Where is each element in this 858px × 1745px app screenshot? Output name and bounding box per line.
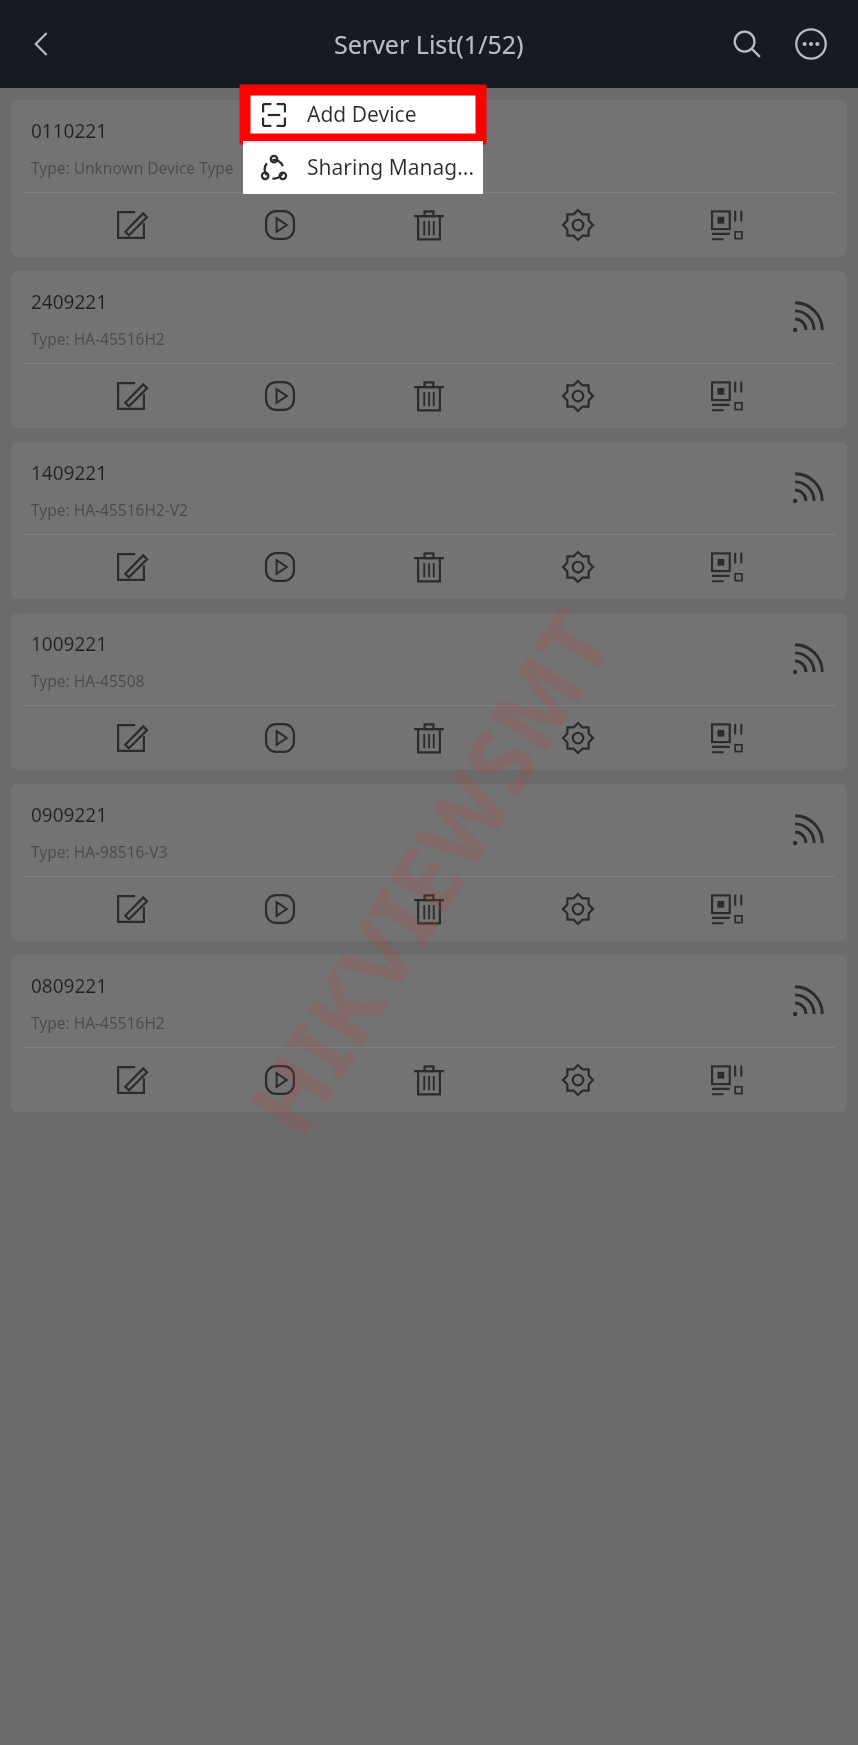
button[interactable]: Play <box>251 538 309 596</box>
button[interactable]: Edit <box>102 1051 160 1109</box>
button[interactable]: 1409221 <box>11 442 847 599</box>
button[interactable]: Delete <box>400 880 458 938</box>
button[interactable]: 1009221 <box>11 613 847 770</box>
button[interactable]: More options <box>784 17 838 71</box>
button[interactable]: Delete <box>400 709 458 767</box>
button[interactable]: Delete <box>400 1051 458 1109</box>
staticText: 0909221 <box>31 802 108 828</box>
button[interactable]: Edit <box>102 880 160 938</box>
button[interactable]: 2409221 <box>11 271 847 428</box>
button[interactable]: QR Code <box>698 538 756 596</box>
staticText: HIKVIEWSMT <box>219 587 639 1157</box>
button[interactable]: Play <box>251 709 309 767</box>
button[interactable]: Search <box>720 17 774 71</box>
button[interactable]: Play <box>251 367 309 425</box>
button[interactable]: Settings <box>549 538 607 596</box>
button[interactable]: 0110221 <box>11 100 847 257</box>
button[interactable]: 0909221 <box>11 784 847 941</box>
staticText: Server List(1/52) <box>334 27 524 61</box>
button[interactable]: Sharing Manag... <box>243 141 483 194</box>
button[interactable]: Play <box>251 880 309 938</box>
button[interactable]: Play <box>251 196 309 254</box>
staticText: 0809221 <box>31 973 108 999</box>
staticText: Type: HA-98516-V3 <box>31 841 168 862</box>
button[interactable]: Settings <box>549 196 607 254</box>
button[interactable]: Back <box>14 16 70 72</box>
button[interactable]: Edit <box>102 709 160 767</box>
staticText: Add Device <box>307 100 417 129</box>
staticText: 2409221 <box>31 289 108 315</box>
button[interactable]: QR Code <box>698 1051 756 1109</box>
staticText: 1009221 <box>31 631 108 657</box>
button[interactable]: Edit <box>102 538 160 596</box>
button[interactable]: Settings <box>549 367 607 425</box>
staticText: Type: Unknown Device Type <box>31 157 234 178</box>
button[interactable]: Settings <box>549 880 607 938</box>
staticText: Sharing Manag... <box>307 153 475 182</box>
staticText: 0110221 <box>31 118 108 144</box>
staticText: Type: HA-45516H2-V2 <box>31 499 188 520</box>
button[interactable]: Delete <box>400 538 458 596</box>
button[interactable]: Settings <box>549 709 607 767</box>
staticText: Type: HA-45516H2 <box>31 1012 165 1033</box>
button[interactable]: Settings <box>549 1051 607 1109</box>
staticText: Type: HA-45508 <box>31 670 145 691</box>
staticText: Type: HA-45516H2 <box>31 328 165 349</box>
button[interactable]: QR Code <box>698 196 756 254</box>
button[interactable]: QR Code <box>698 367 756 425</box>
button[interactable]: Edit <box>102 367 160 425</box>
button[interactable]: Play <box>251 1051 309 1109</box>
button[interactable]: QR Code <box>698 880 756 938</box>
button[interactable]: Delete <box>400 367 458 425</box>
button[interactable]: Delete <box>400 196 458 254</box>
button[interactable]: Edit <box>102 196 160 254</box>
button[interactable]: Add Device <box>243 88 483 141</box>
button[interactable]: 0809221 <box>11 955 847 1112</box>
staticText: 1409221 <box>31 460 108 486</box>
button[interactable]: QR Code <box>698 709 756 767</box>
